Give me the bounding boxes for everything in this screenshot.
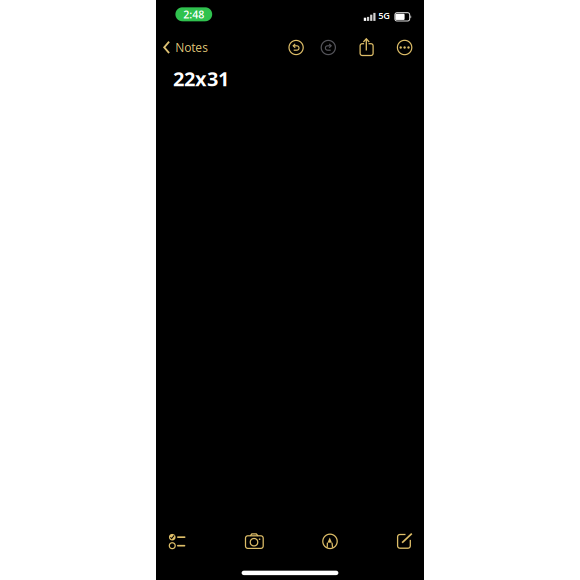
staticText: 2:48 <box>183 7 204 21</box>
button[interactable]: Markup <box>315 528 345 554</box>
staticText: Notes <box>175 39 208 55</box>
button[interactable]: More <box>392 34 418 60</box>
button[interactable]: Redo <box>315 34 341 60</box>
staticText: 22x31 <box>173 65 229 92</box>
button[interactable]: Note body <box>156 64 424 522</box>
button[interactable]: New Note <box>391 528 421 554</box>
button[interactable]: Undo <box>283 34 309 60</box>
button[interactable]: Camera <box>239 529 269 555</box>
staticText: 5G <box>378 9 390 21</box>
button[interactable]: Notes <box>161 32 219 62</box>
button[interactable]: Checklist <box>167 531 187 551</box>
button[interactable]: Share <box>353 34 379 60</box>
